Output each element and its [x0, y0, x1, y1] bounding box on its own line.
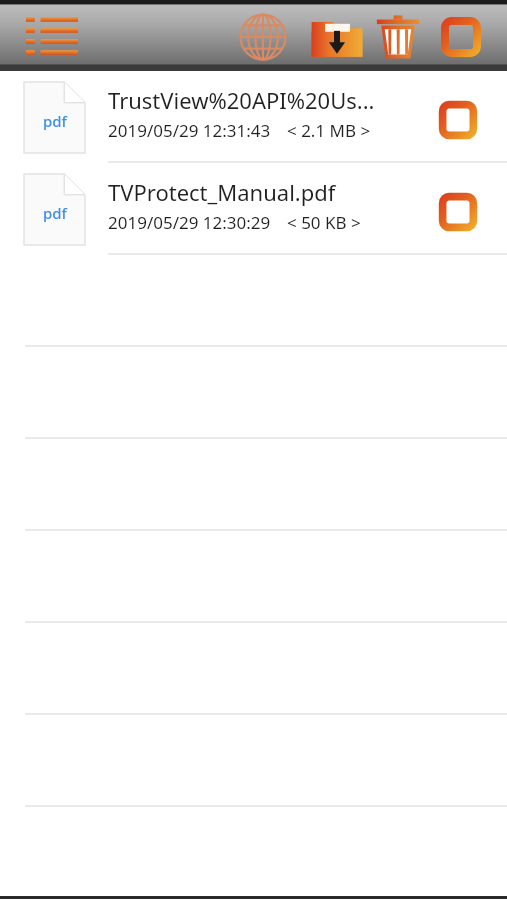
button[interactable]: Select item: [432, 94, 484, 146]
staticText: 2019/05/29 12:31:43: [108, 119, 271, 142]
button[interactable]: Save to folder: [306, 8, 368, 66]
staticText: 2019/05/29 12:30:29: [108, 211, 271, 234]
staticText: pdf: [43, 111, 67, 131]
button[interactable]: Select all: [430, 8, 492, 66]
button[interactable]: Download from web: [233, 8, 293, 66]
button[interactable]: List view: [18, 10, 86, 62]
button[interactable]: Delete: [369, 8, 427, 66]
button[interactable]: pdf: [0, 71, 507, 163]
button[interactable]: Select item: [432, 186, 484, 238]
staticText: < 2.1 MB >: [287, 119, 371, 142]
button[interactable]: pdf: [0, 163, 507, 255]
staticText: TrustView%20API%20Us...: [108, 85, 375, 115]
staticText: < 50 KB >: [287, 211, 361, 234]
staticText: TVProtect_Manual.pdf: [108, 177, 336, 207]
staticText: pdf: [43, 203, 67, 223]
